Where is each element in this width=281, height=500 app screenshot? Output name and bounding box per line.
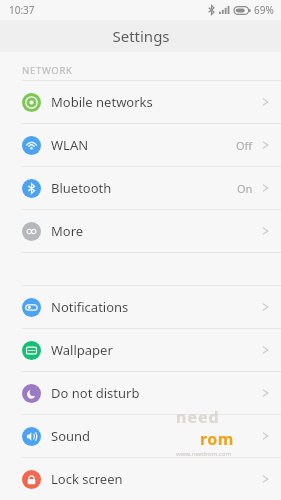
staticText: Sound <box>51 427 91 445</box>
staticText: 69% <box>254 3 274 17</box>
staticText: Do not disturb <box>51 384 140 402</box>
staticText: WLAN <box>51 136 89 154</box>
button[interactable]: More <box>0 210 281 252</box>
staticText: Wallpaper <box>51 341 113 359</box>
staticText: Lock screen <box>51 470 123 488</box>
staticText: More <box>51 222 84 240</box>
staticText: Mobile networks <box>51 93 153 111</box>
staticText: need <box>176 406 220 428</box>
staticText: On <box>237 181 253 196</box>
staticText: Settings <box>112 26 170 46</box>
staticText: NETWORK <box>22 64 73 77</box>
button[interactable]: Do not disturb <box>0 372 281 414</box>
staticText: rom <box>200 428 234 450</box>
staticText: Bluetooth <box>51 179 112 197</box>
button[interactable]: WLAN <box>0 124 281 166</box>
button[interactable]: Mobile networks <box>0 81 281 123</box>
button[interactable]: Lock screen <box>0 458 281 500</box>
staticText: www.needrom.com <box>176 450 232 458</box>
button[interactable]: Sound <box>0 415 281 457</box>
button[interactable]: Notifications <box>0 286 281 328</box>
staticText: Notifications <box>51 298 129 316</box>
button[interactable]: Wallpaper <box>0 329 281 371</box>
staticText: Off <box>236 138 253 153</box>
button[interactable]: Bluetooth <box>0 167 281 209</box>
staticText: 10:37 <box>9 3 35 17</box>
